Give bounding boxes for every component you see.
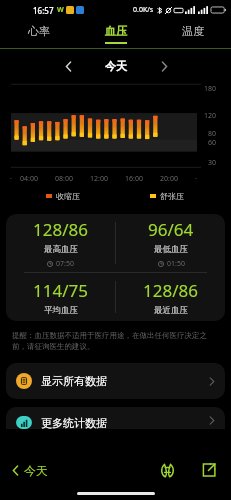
staticText: 04:00 — [20, 174, 38, 184]
staticText: 最低血压 — [154, 244, 188, 255]
staticText: 01:50 — [167, 259, 185, 269]
button[interactable]: Health metrics — [155, 458, 179, 482]
staticText: 12:00 — [90, 174, 108, 184]
staticText: 温度 — [182, 24, 204, 38]
staticText: 最近血压 — [154, 305, 188, 316]
button[interactable]: Next day — [153, 55, 175, 77]
staticText: · — [10, 174, 12, 184]
staticText: 120 — [204, 111, 217, 121]
staticText: 0.0K/s — [133, 5, 154, 15]
staticText: 提醒：血压数据不适用于医疗用途，在做出任何医疗决定之前，请征询医生的建议。 — [12, 331, 219, 351]
staticText: 128/86 — [143, 279, 198, 302]
staticText: 收缩压 — [56, 191, 80, 201]
staticText: 显示所有数据 — [41, 374, 107, 388]
staticText: 07:50 — [56, 259, 74, 269]
staticText: 08:00 — [55, 174, 73, 184]
staticText: 60 — [208, 138, 217, 148]
staticText: 舒张压 — [160, 191, 184, 201]
button[interactable]: 今天 — [10, 459, 50, 482]
button[interactable]: 更多统计数据 — [6, 407, 225, 429]
button[interactable]: 血压 — [77, 20, 154, 48]
button[interactable]: 128/86 — [6, 214, 115, 272]
button[interactable]: 128/86 — [116, 273, 225, 321]
button[interactable]: 温度 — [154, 20, 231, 48]
staticText: 114/75 — [33, 279, 88, 302]
staticText: 心率 — [28, 24, 50, 38]
staticText: 96/64 — [148, 218, 194, 241]
staticText: 更多统计数据 — [41, 416, 107, 429]
staticText: 今天 — [105, 59, 127, 73]
button[interactable]: 心率 — [0, 20, 77, 48]
staticText: 今天 — [24, 463, 48, 478]
staticText: W — [57, 5, 64, 15]
staticText: 血压 — [105, 24, 127, 38]
button[interactable]: 显示所有数据 — [6, 363, 225, 399]
staticText: 80 — [208, 129, 217, 139]
button[interactable]: 96/64 — [116, 214, 225, 272]
staticText: 16:57 — [33, 5, 54, 16]
staticText: 30 — [208, 158, 217, 168]
staticText: 180 — [204, 84, 217, 94]
button[interactable]: 114/75 — [6, 273, 115, 321]
button[interactable]: Previous day — [57, 55, 79, 77]
staticText: 20:00 — [160, 174, 178, 184]
staticText: 最高血压 — [44, 244, 78, 255]
button[interactable]: Share — [197, 458, 221, 482]
staticText: 128/86 — [33, 218, 88, 241]
staticText: 平均血压 — [44, 305, 78, 316]
staticText: · — [195, 174, 197, 184]
staticText: 16:00 — [125, 174, 143, 184]
